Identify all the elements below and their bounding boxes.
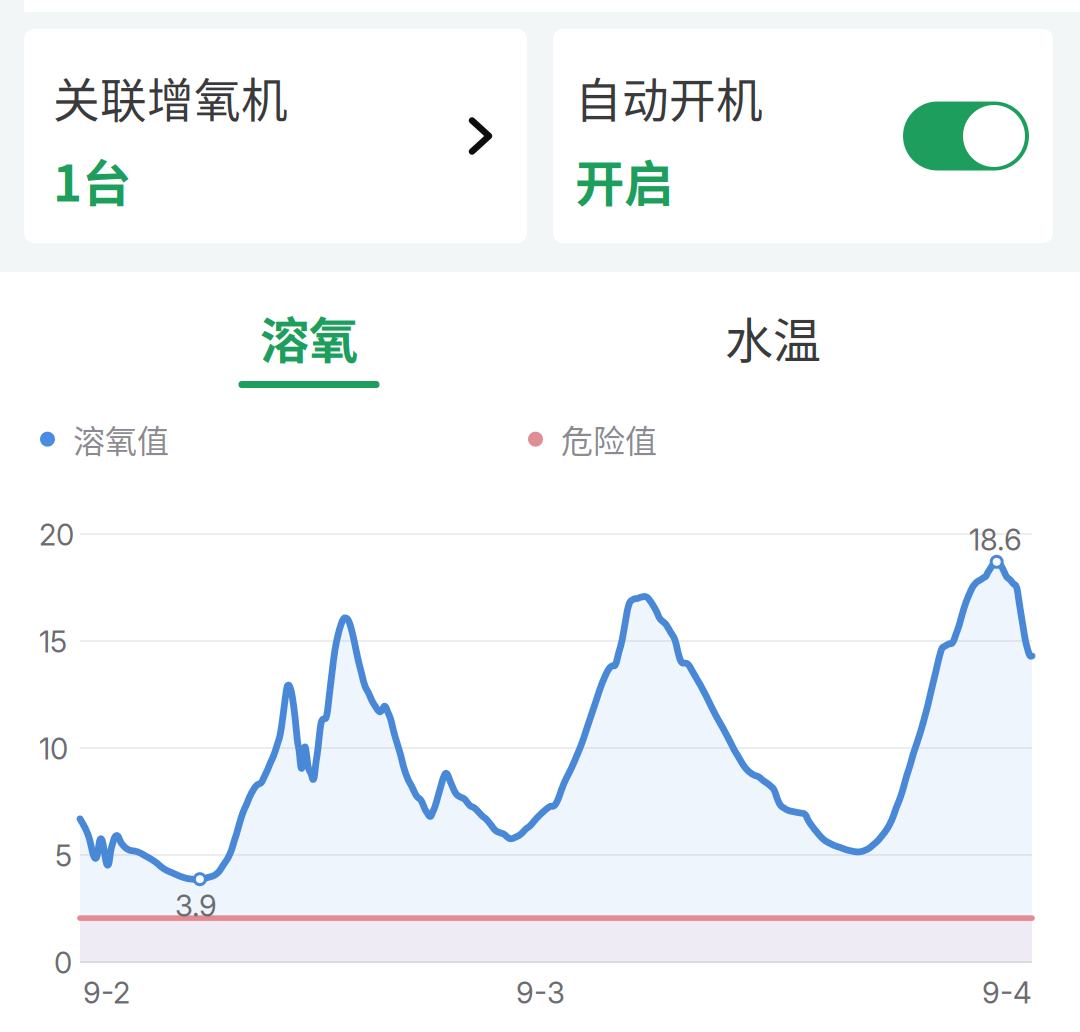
staticText: 溶氧值 <box>73 416 169 462</box>
staticText: 自动开机 <box>575 63 763 131</box>
staticText: 水温 <box>725 302 821 372</box>
button[interactable]: 溶氧 <box>199 309 419 388</box>
staticText: 9-3 <box>516 975 565 1010</box>
staticText: 18.6 <box>969 522 1022 557</box>
staticText: 3.9 <box>175 888 217 923</box>
staticText: 危险值 <box>561 416 657 462</box>
staticText: 9-4 <box>982 975 1032 1010</box>
staticText: 10 <box>39 731 68 766</box>
staticText: 溶氧 <box>260 301 358 373</box>
button[interactable]: 关联增氧机 <box>24 29 527 243</box>
staticText: 20 <box>39 517 74 552</box>
staticText: 15 <box>39 624 67 659</box>
button[interactable]: 自动开机 <box>903 101 1029 170</box>
staticText: 关联增氧机 <box>53 63 288 131</box>
staticText: 5 <box>55 838 72 873</box>
staticText: 1台 <box>53 144 131 216</box>
staticText: 开启 <box>575 144 673 216</box>
button[interactable]: 水温 <box>663 309 883 388</box>
staticText: 9-2 <box>83 975 130 1010</box>
staticText: 0 <box>54 945 72 980</box>
